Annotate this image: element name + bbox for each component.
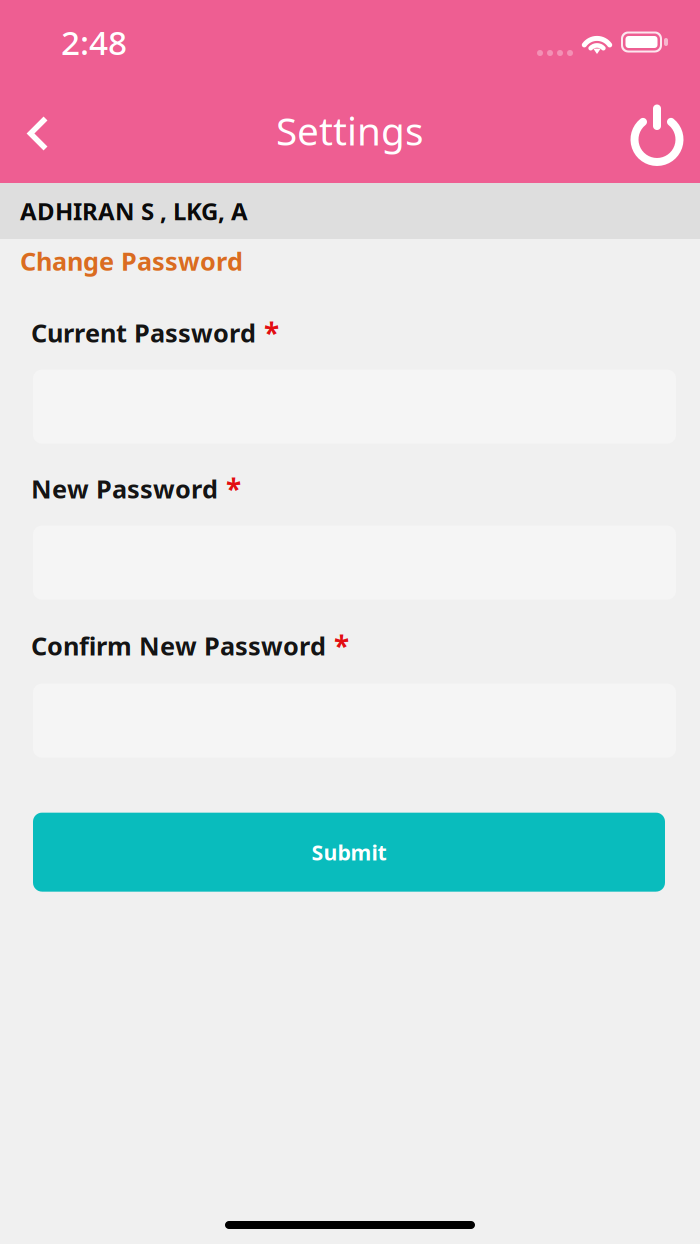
staticText: Submit xyxy=(311,838,386,866)
staticText: New Password xyxy=(31,472,218,505)
staticText: * xyxy=(264,314,279,351)
staticText: Change Password xyxy=(20,244,243,278)
staticText: Settings xyxy=(276,105,424,156)
staticText: 2:48 xyxy=(61,20,127,64)
staticText: * xyxy=(334,627,349,664)
staticText: * xyxy=(226,470,241,507)
staticText: Confirm New Password xyxy=(31,629,326,662)
staticText: ADHIRAN S , LKG, A xyxy=(20,195,248,227)
staticText: Current Password xyxy=(31,316,256,349)
button[interactable]: Submit xyxy=(33,813,665,892)
button[interactable]: Back xyxy=(7,90,69,176)
button[interactable]: Log out xyxy=(622,88,692,178)
